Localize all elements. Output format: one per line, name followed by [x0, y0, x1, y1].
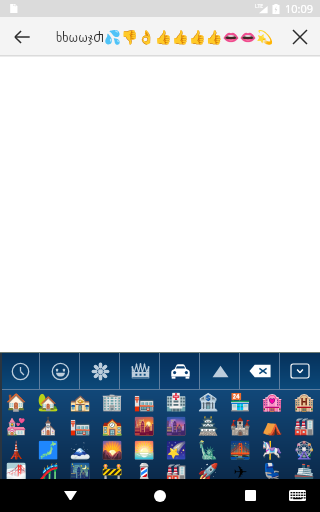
staticText: 🏢 — [101, 392, 123, 412]
button[interactable]: 🌆 — [160, 414, 192, 438]
button[interactable]: 🚢 — [288, 462, 320, 479]
button[interactable]: Close — [280, 17, 320, 57]
staticText: 🏦 — [197, 392, 219, 412]
staticText: 🗻 — [69, 440, 91, 460]
button[interactable]: 🌉 — [224, 438, 256, 462]
button[interactable]: Symbols — [200, 352, 240, 390]
staticText: ⛺ — [261, 416, 283, 436]
button[interactable]: Recent apps — [232, 479, 268, 512]
staticText: 🏩 — [261, 392, 283, 412]
staticText: 🌆 — [165, 416, 187, 436]
staticText: 🌅 — [133, 440, 155, 460]
button[interactable]: 🗻 — [64, 438, 96, 462]
staticText: 💒 — [5, 416, 27, 436]
staticText: LTE — [255, 3, 264, 10]
button[interactable]: 🎡 — [288, 438, 320, 462]
staticText: 🏭 — [293, 416, 315, 436]
staticText: 🌁 — [5, 462, 27, 479]
staticText: 🏫 — [101, 416, 123, 436]
button[interactable]: 🌄 — [96, 438, 128, 462]
button[interactable]: ✈️ — [224, 462, 256, 479]
button[interactable]: 🏭 — [160, 462, 192, 479]
button[interactable]: 🗽 — [192, 438, 224, 462]
button[interactable]: 🏪 — [224, 390, 256, 414]
staticText: 🌄 — [101, 440, 123, 460]
button[interactable]: 🏡 — [32, 390, 64, 414]
staticText: ⛪ — [37, 416, 59, 436]
button[interactable]: 💈 — [128, 462, 160, 479]
staticText: 🏥 — [165, 392, 187, 412]
button[interactable]: 🌁 — [0, 462, 32, 479]
staticText: 🏤 — [69, 392, 91, 412]
button[interactable]: 🌇 — [128, 414, 160, 438]
button[interactable]: Smileys — [40, 352, 80, 390]
button[interactable]: Objects — [120, 352, 160, 390]
button[interactable]: 🏦 — [192, 390, 224, 414]
staticText: 🌇 — [133, 416, 155, 436]
button[interactable]: Back — [52, 479, 88, 512]
button[interactable]: 🏰 — [224, 414, 256, 438]
staticText: ხხωωჯႻ — [56, 29, 104, 45]
button[interactable]: 🏭 — [288, 414, 320, 438]
staticText: 🏯 — [197, 416, 219, 436]
staticText: 🗾 — [37, 440, 59, 460]
button[interactable]: 🏢 — [96, 390, 128, 414]
staticText: 🚀 — [197, 462, 219, 479]
staticText: 🗽 — [197, 440, 219, 460]
staticText: 🏠 — [5, 392, 27, 412]
button[interactable]: 🏠 — [0, 390, 32, 414]
button[interactable]: ⛪ — [32, 414, 64, 438]
button[interactable]: 🌠 — [160, 438, 192, 462]
button[interactable]: 🏤 — [64, 390, 96, 414]
staticText: 💦👎👌👍👍👍👍👄👄💫 — [104, 29, 274, 45]
button[interactable]: 🗾 — [32, 438, 64, 462]
button[interactable]: 🏩 — [256, 390, 288, 414]
staticText: 🎠 — [261, 440, 283, 460]
button[interactable]: 🚧 — [96, 462, 128, 479]
staticText: 🏪 — [229, 392, 251, 412]
button[interactable]: Hide keyboard — [280, 352, 320, 390]
button[interactable]: Switch input method — [283, 479, 311, 512]
staticText: 🎢 — [37, 462, 59, 479]
button[interactable]: 🎠 — [256, 438, 288, 462]
button[interactable]: 🌃 — [64, 462, 96, 479]
button[interactable]: Home — [142, 479, 178, 512]
staticText: 🏭 — [165, 462, 187, 479]
button[interactable]: 🎢 — [32, 462, 64, 479]
staticText: 🏡 — [37, 392, 59, 412]
button[interactable]: 🏣 — [128, 390, 160, 414]
staticText: 🌠 — [165, 440, 187, 460]
staticText: 🏨 — [293, 392, 315, 412]
staticText: 🚧 — [101, 462, 123, 479]
button[interactable]: ⛺ — [256, 414, 288, 438]
button[interactable]: 💺 — [256, 462, 288, 479]
button[interactable]: Navigate up — [0, 17, 44, 57]
staticText: 💈 — [133, 462, 155, 479]
staticText: 🗼 — [5, 440, 27, 460]
staticText: 🏣 — [69, 416, 91, 436]
button[interactable]: Delete — [240, 352, 280, 390]
staticText: 💺 — [261, 462, 283, 479]
button[interactable]: Places — [160, 352, 200, 390]
button[interactable]: 🗼 — [0, 438, 32, 462]
staticText: 🌉 — [229, 440, 251, 460]
staticText: 🌃 — [69, 462, 91, 479]
staticText: 🚢 — [293, 462, 315, 479]
button[interactable]: 🏣 — [64, 414, 96, 438]
staticText: ✈️ — [233, 462, 248, 479]
button[interactable]: 🌅 — [128, 438, 160, 462]
button[interactable]: 🏫 — [96, 414, 128, 438]
button[interactable]: 🏥 — [160, 390, 192, 414]
button[interactable]: 💒 — [0, 414, 32, 438]
staticText: 🏰 — [229, 416, 251, 436]
staticText: 🎡 — [293, 440, 315, 460]
button[interactable]: Recent emoji — [0, 352, 40, 390]
button[interactable]: 🚀 — [192, 462, 224, 479]
staticText: 10:09 — [285, 1, 314, 16]
staticText: 🏣 — [133, 392, 155, 412]
button[interactable]: 🏯 — [192, 414, 224, 438]
button[interactable]: 🏨 — [288, 390, 320, 414]
button[interactable]: Nature — [80, 352, 120, 390]
